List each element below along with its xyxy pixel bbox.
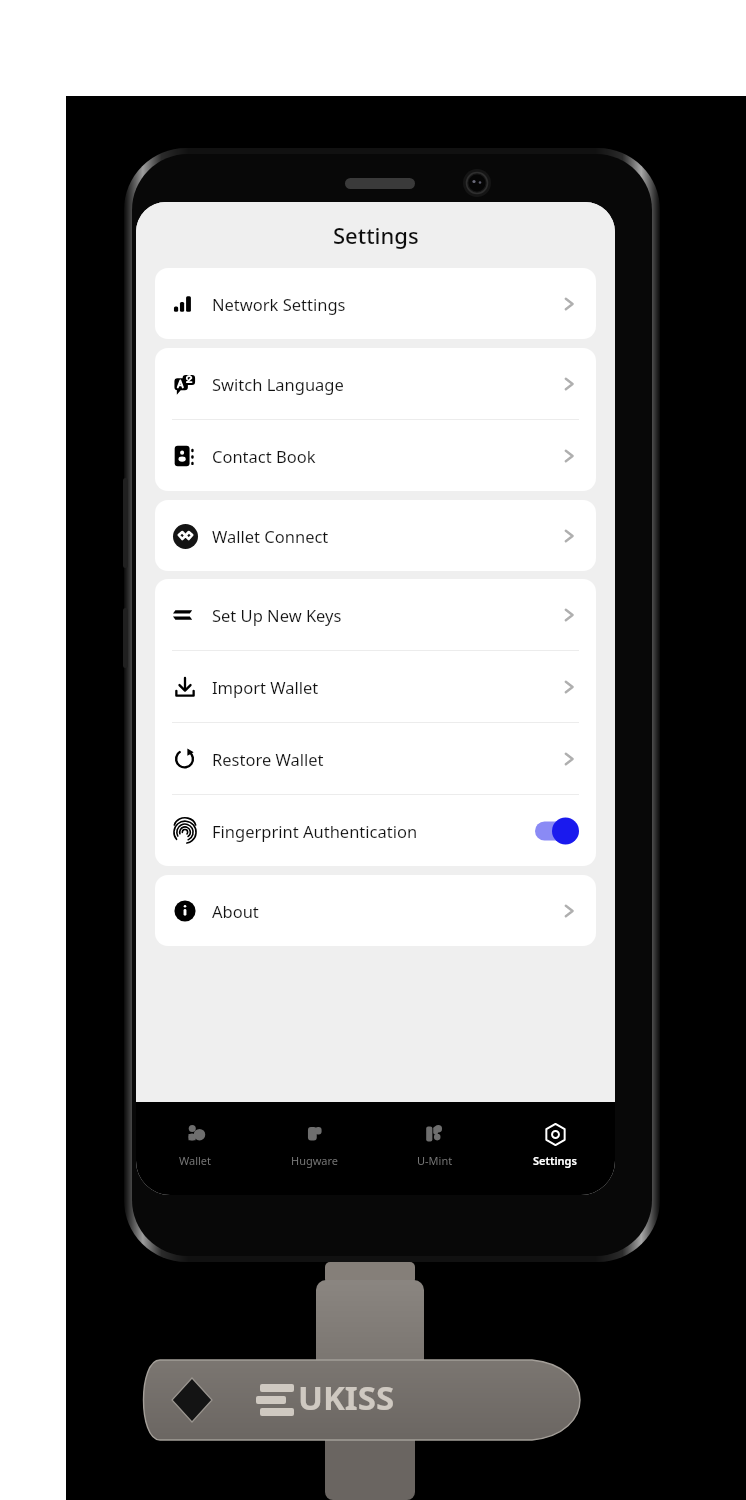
button[interactable]: Fingerprint Authentication	[155, 795, 596, 866]
staticText: Hugware	[291, 1153, 339, 1168]
staticText: About	[212, 900, 259, 922]
staticText: Settings	[533, 1153, 577, 1168]
staticText: Wallet	[179, 1153, 212, 1168]
button[interactable]: Import Wallet	[155, 651, 596, 722]
button[interactable]: Wallet Connect	[155, 500, 596, 571]
staticText: Import Wallet	[212, 676, 319, 698]
button[interactable]: Set Up New Keys	[155, 579, 596, 650]
button[interactable]: U-Mint	[375, 1102, 495, 1195]
button[interactable]: Settings	[495, 1102, 615, 1195]
button[interactable]: Wallet	[136, 1102, 255, 1195]
staticText: Contact Book	[212, 445, 316, 467]
staticText: UKISS	[298, 1375, 395, 1420]
button[interactable]: Fingerprint authentication toggle	[535, 817, 579, 845]
button[interactable]: About	[155, 875, 596, 946]
staticText: U-Mint	[417, 1153, 453, 1168]
staticText: Settings	[333, 220, 419, 250]
staticText: Fingerprint Authentication	[212, 820, 418, 842]
button[interactable]: Switch Language	[155, 348, 596, 419]
button[interactable]: Contact Book	[155, 420, 596, 491]
button[interactable]: Hugware	[255, 1102, 375, 1195]
staticText: Wallet Connect	[212, 525, 329, 547]
staticText: Restore Wallet	[212, 748, 324, 770]
button[interactable]: Network Settings	[155, 268, 596, 339]
staticText: Switch Language	[212, 373, 344, 395]
staticText: Network Settings	[212, 293, 346, 315]
staticText: Set Up New Keys	[212, 604, 342, 626]
button[interactable]: Restore Wallet	[155, 723, 596, 794]
